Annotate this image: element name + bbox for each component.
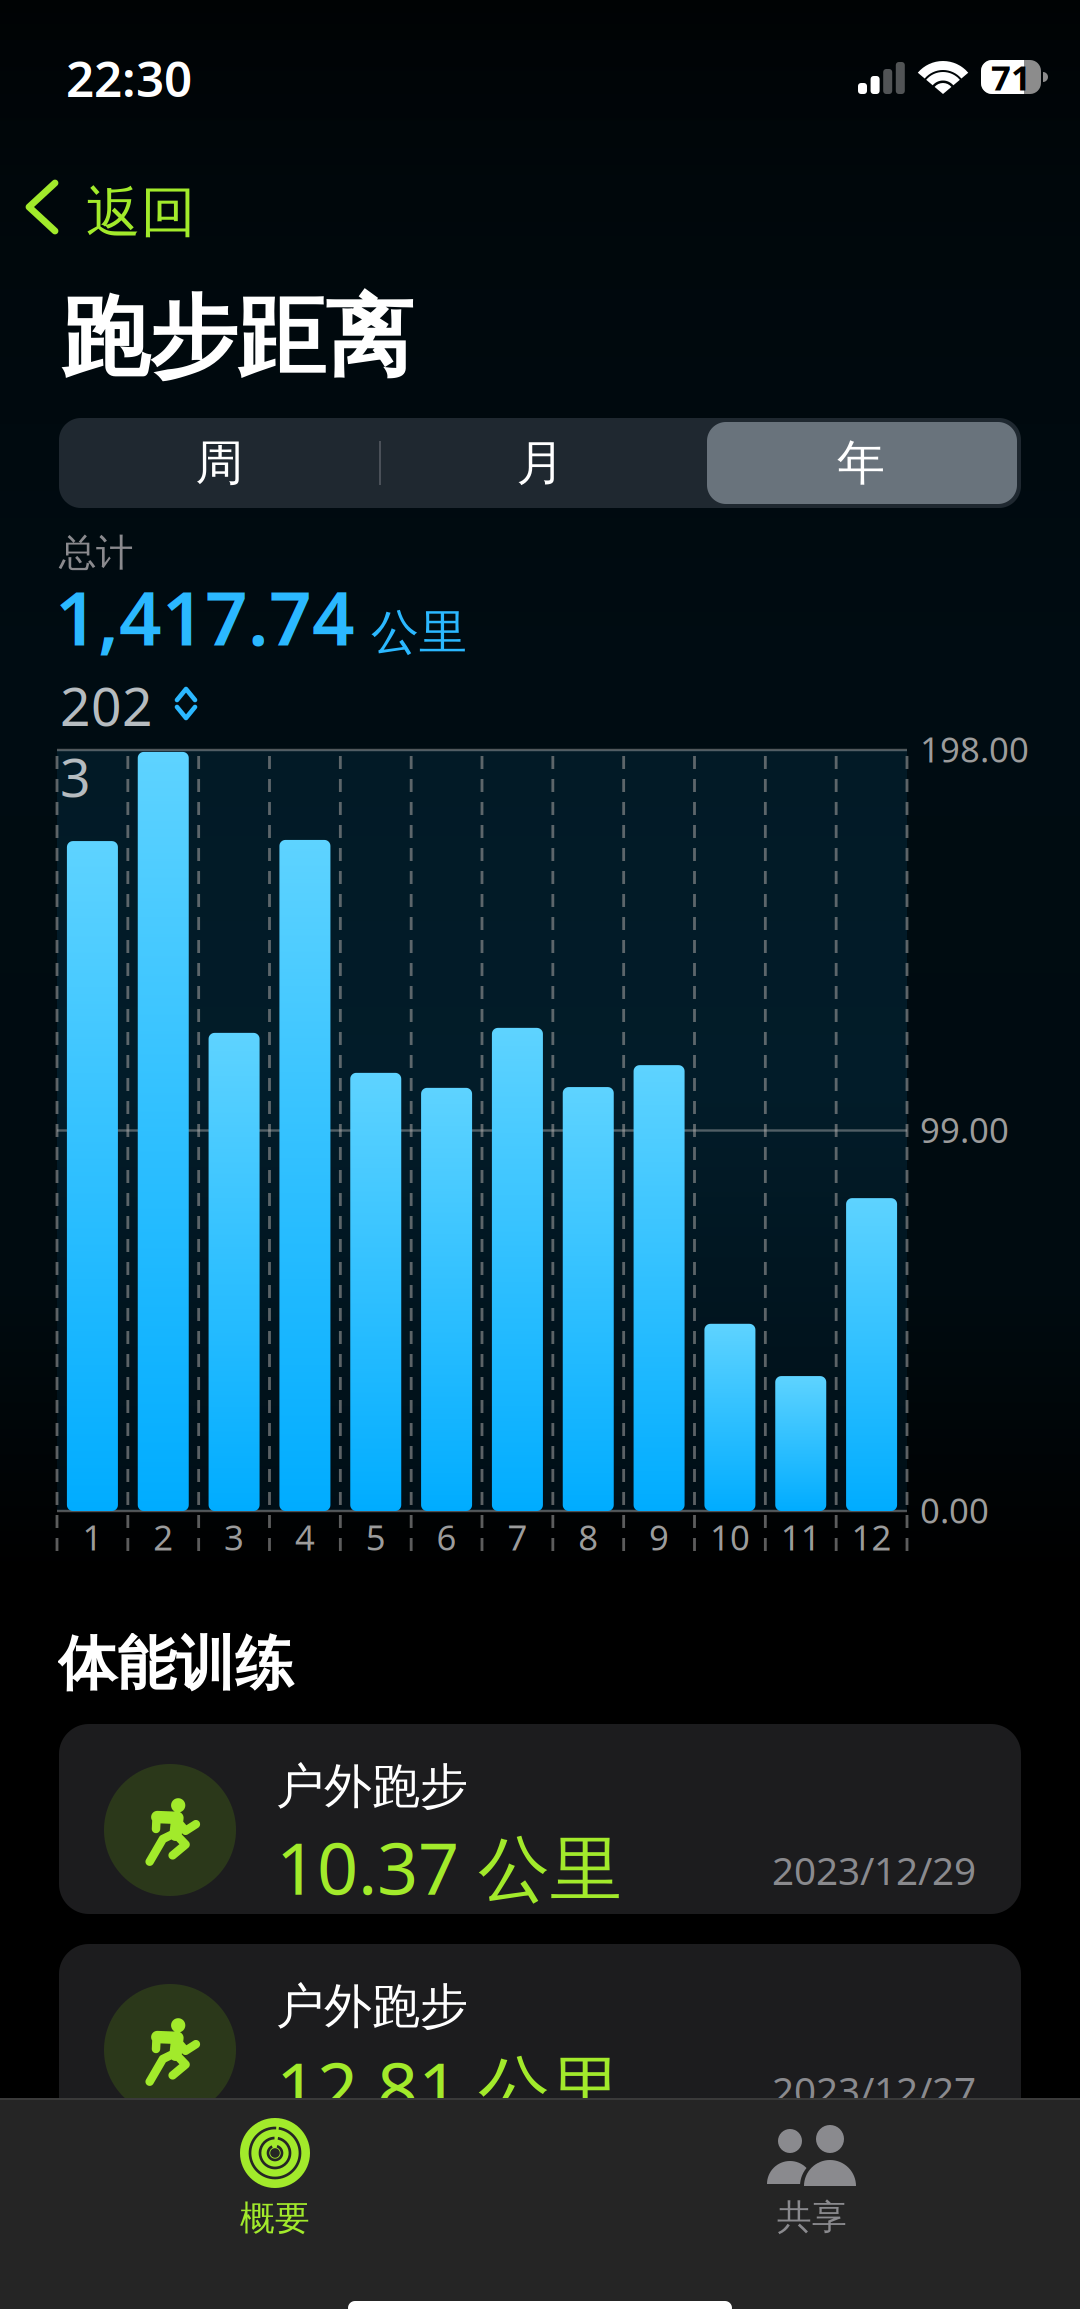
staticText: 22:30 bbox=[66, 45, 192, 110]
staticText: 月 bbox=[516, 433, 564, 492]
staticText: 5 bbox=[366, 1514, 386, 1560]
staticText: 户外跑步 bbox=[276, 1757, 468, 1816]
staticText: 6 bbox=[437, 1514, 457, 1560]
staticText: 年 bbox=[837, 433, 885, 492]
staticText: 2023 bbox=[60, 670, 153, 812]
staticText: 4 bbox=[295, 1514, 315, 1560]
staticText: 11 bbox=[781, 1514, 821, 1560]
staticText: 2023/12/29 bbox=[772, 1844, 976, 1896]
staticText: 2023/12/27 bbox=[772, 2064, 976, 2116]
staticText: 共享 bbox=[777, 2196, 847, 2239]
staticText: 体能训练 bbox=[58, 1628, 294, 1700]
button[interactable]: 共享 bbox=[540, 2098, 1080, 2258]
staticText: 12.81 公里 bbox=[276, 2039, 622, 2135]
staticText: 跑步距离 bbox=[61, 284, 413, 392]
staticText: 0.00 bbox=[920, 1487, 989, 1533]
staticText: 99.00 bbox=[920, 1106, 1009, 1152]
staticText: 10 bbox=[710, 1514, 750, 1560]
button[interactable]: 2023 bbox=[59, 670, 259, 726]
staticText: 周 bbox=[195, 433, 243, 492]
staticText: 3 bbox=[224, 1514, 244, 1560]
staticText: 9 bbox=[649, 1514, 669, 1560]
button[interactable]: 户外跑步 bbox=[59, 1724, 1021, 1914]
staticText: 198.00 bbox=[920, 726, 1029, 772]
button[interactable]: 返回 bbox=[0, 163, 260, 251]
staticText: 1 bbox=[82, 1514, 102, 1560]
staticText: 7 bbox=[507, 1514, 527, 1560]
staticText: 12 bbox=[852, 1514, 892, 1560]
staticText: 总计 bbox=[59, 530, 133, 576]
button[interactable]: 周 bbox=[59, 418, 380, 508]
button[interactable]: 概要 bbox=[0, 2098, 540, 2258]
button[interactable]: 年 bbox=[701, 418, 1021, 508]
button[interactable]: 户外跑步 bbox=[59, 1944, 1021, 2134]
staticText: 户外跑步 bbox=[276, 1977, 468, 2036]
staticText: 2 bbox=[153, 1514, 173, 1560]
staticText: 10.37 公里 bbox=[276, 1819, 622, 1915]
staticText: 公里 bbox=[371, 603, 467, 662]
button[interactable]: 月 bbox=[380, 418, 701, 508]
staticText: 1,417.74 bbox=[55, 567, 355, 666]
staticText: 返回 bbox=[86, 179, 196, 246]
staticText: 8 bbox=[578, 1514, 598, 1560]
staticText: 概要 bbox=[240, 2197, 310, 2240]
staticText: 71 bbox=[991, 54, 1031, 100]
